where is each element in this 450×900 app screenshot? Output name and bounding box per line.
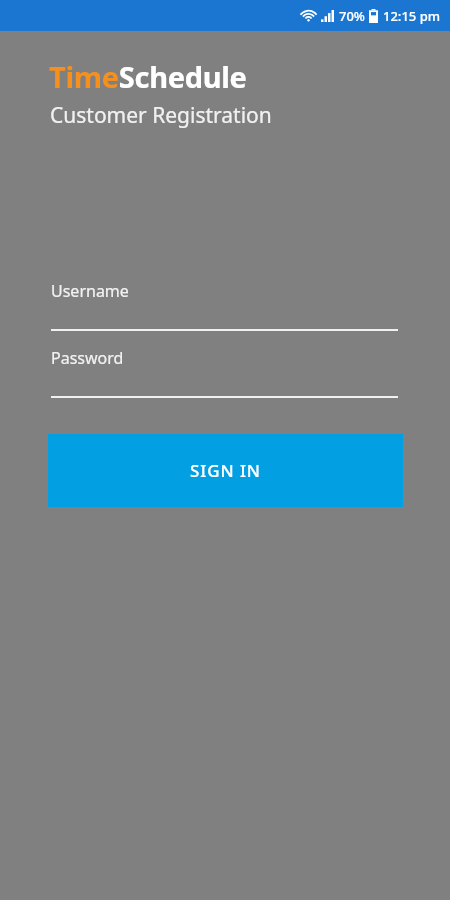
staticText: TimeSchedule — [49, 57, 247, 96]
staticText: Customer Registration — [50, 101, 272, 130]
staticText: Username — [51, 280, 129, 302]
button[interactable]: SIGN IN — [48, 434, 403, 507]
staticText: Password — [51, 347, 124, 369]
staticText: SIGN IN — [190, 459, 261, 482]
staticText: 12:15 pm — [383, 7, 441, 25]
button[interactable]: Password — [0, 347, 450, 398]
other: Mobile signal strength — [321, 10, 334, 22]
other: Wi-Fi signal — [301, 10, 316, 22]
other: Battery 70 percent — [369, 9, 378, 23]
button[interactable]: Username — [0, 280, 450, 331]
staticText: 70% — [339, 7, 365, 25]
